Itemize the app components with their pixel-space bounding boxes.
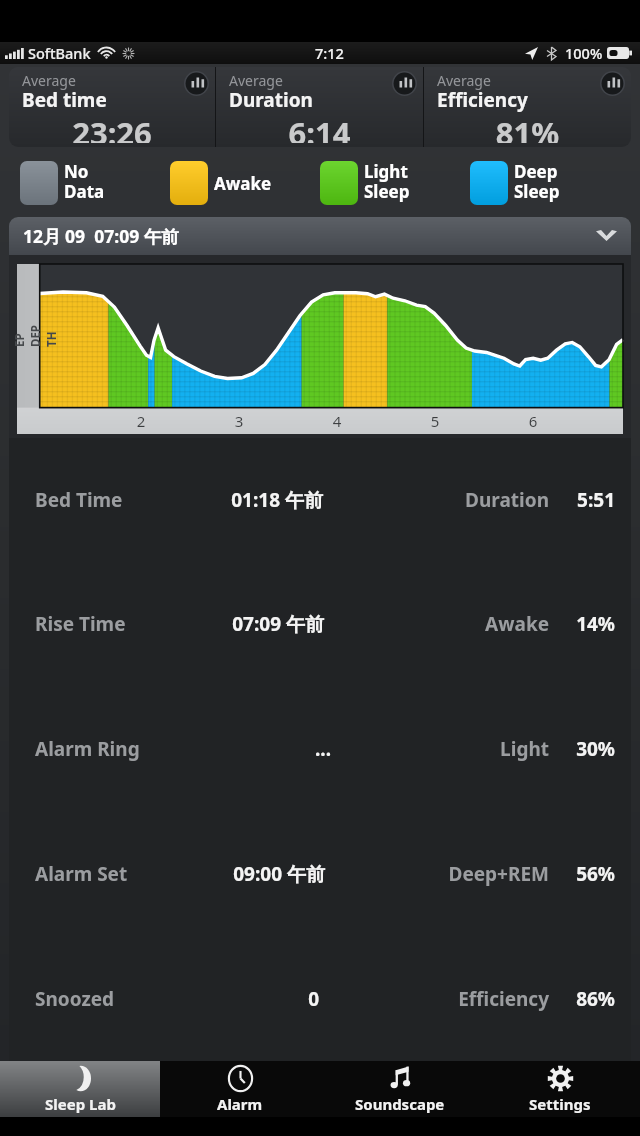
staticText: 6: [484, 411, 582, 431]
button[interactable]: Light: [320, 160, 470, 206]
staticText: 12月 09 07:09 午前: [23, 224, 179, 248]
button[interactable]: Alarm: [160, 1061, 320, 1117]
staticText: Bed Time: [35, 487, 123, 513]
button[interactable]: Alarm Ring: [9, 686, 631, 811]
staticText: Alarm Ring: [35, 736, 140, 762]
staticText: 30%: [559, 736, 615, 762]
button[interactable]: Deep: [470, 160, 628, 206]
button[interactable]: Settings: [480, 1061, 640, 1117]
staticText: Light: [364, 160, 408, 183]
staticText: Efficiency: [437, 87, 528, 113]
staticText: Sleep Lab: [45, 1094, 116, 1114]
staticText: Awake: [342, 611, 549, 637]
staticText: 7:12: [315, 43, 344, 63]
button[interactable]: Soundscape: [320, 1061, 480, 1117]
staticText: SLEEP DEPTH: [9, 325, 60, 347]
staticText: 14%: [559, 611, 615, 637]
staticText: Sleep: [514, 180, 560, 203]
staticText: Data: [64, 180, 105, 203]
staticText: 3: [190, 411, 288, 431]
staticText: No: [64, 160, 89, 183]
staticText: SoftBank: [28, 43, 91, 63]
staticText: 5: [386, 411, 484, 431]
staticText: Deep: [514, 160, 558, 183]
other: Expand session: [596, 230, 617, 242]
staticText: 09:00 午前: [128, 861, 325, 887]
staticText: Alarm Set: [35, 861, 128, 887]
staticText: 23:26: [22, 112, 202, 143]
button[interactable]: Average: [216, 67, 423, 147]
button[interactable]: Average: [424, 67, 631, 147]
staticText: Average: [229, 71, 283, 90]
staticText: 0: [115, 986, 319, 1012]
staticText: Sleep: [364, 180, 410, 203]
staticText: Average: [22, 71, 76, 90]
staticText: 81%: [437, 112, 618, 143]
staticText: Snoozed: [35, 986, 115, 1012]
staticText: 07:09 午前: [126, 611, 324, 637]
button[interactable]: Alarm Set: [9, 811, 631, 936]
staticText: 4: [288, 411, 386, 431]
staticText: Average: [437, 71, 491, 90]
staticText: Duration: [341, 487, 549, 513]
staticText: Light: [349, 736, 549, 762]
staticText: 56%: [559, 861, 615, 887]
staticText: 100%: [565, 43, 603, 63]
staticText: 86%: [559, 986, 615, 1012]
button[interactable]: 12月 09 07:09 午前: [9, 217, 631, 255]
staticText: 5:51: [559, 487, 615, 513]
staticText: 2: [92, 411, 190, 431]
button[interactable]: No: [20, 160, 170, 206]
button[interactable]: Sleep Lab: [0, 1061, 160, 1117]
staticText: Bed time: [22, 87, 107, 113]
staticText: Settings: [529, 1094, 591, 1114]
button[interactable]: Rise Time: [9, 562, 631, 686]
staticText: Rise Time: [35, 611, 126, 637]
staticText: ...: [140, 736, 331, 762]
staticText: Deep+REM: [343, 861, 549, 887]
staticText: 01:18 午前: [123, 487, 323, 513]
staticText: Duration: [229, 87, 313, 113]
staticText: Efficiency: [337, 986, 549, 1012]
button[interactable]: Bed Time: [9, 438, 631, 562]
button[interactable]: Snoozed: [9, 936, 631, 1061]
staticText: Soundscape: [355, 1094, 445, 1114]
button[interactable]: Awake: [170, 161, 320, 205]
staticText: Awake: [214, 172, 272, 195]
staticText: Alarm: [217, 1094, 263, 1114]
staticText: 6:14: [229, 112, 410, 143]
button[interactable]: Average: [9, 67, 215, 147]
